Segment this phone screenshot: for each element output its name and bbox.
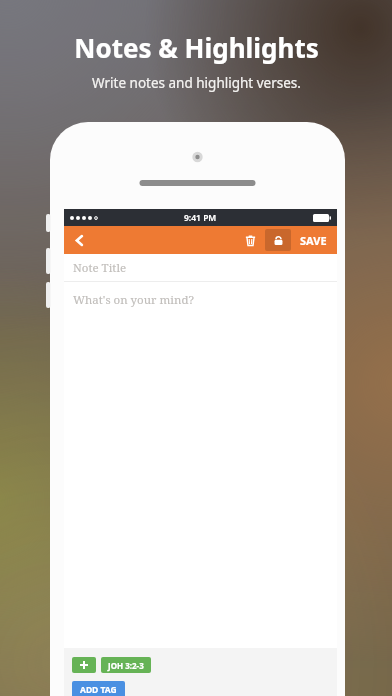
- staticText: Write notes and highlight verses.: [92, 74, 301, 92]
- staticText: JOH 3:2-3: [108, 660, 144, 671]
- button[interactable]: Note Title: [64, 254, 337, 281]
- button[interactable]: Back: [64, 226, 94, 254]
- button[interactable]: Lock note: [265, 229, 291, 251]
- button[interactable]: Delete note: [237, 229, 263, 251]
- button[interactable]: JOH 3:2-3: [101, 657, 151, 673]
- staticText: SAVE: [300, 233, 327, 248]
- staticText: What's on your mind?: [73, 292, 194, 308]
- staticText: ADD TAG: [80, 684, 117, 696]
- button[interactable]: What's on your mind?: [64, 282, 337, 648]
- staticText: Notes & Highlights: [74, 30, 319, 65]
- button[interactable]: Add verse: [72, 657, 96, 673]
- staticText: Note Title: [73, 260, 127, 276]
- button[interactable]: ADD TAG: [72, 681, 125, 696]
- staticText: 9:41 PM: [184, 212, 217, 224]
- button[interactable]: SAVE: [293, 229, 334, 251]
